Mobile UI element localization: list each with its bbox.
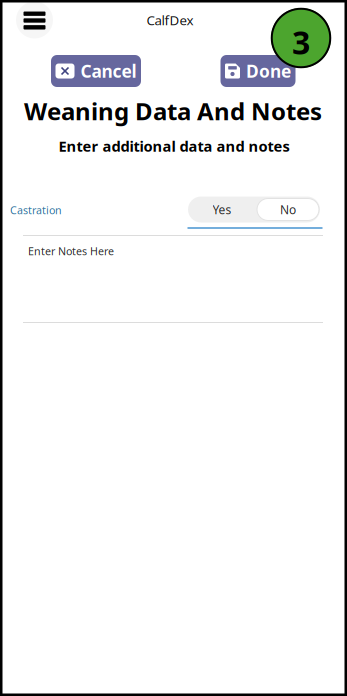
staticText: Enter additional data and notes	[58, 136, 289, 156]
staticText: No	[280, 201, 296, 217]
staticText: Yes	[212, 201, 231, 217]
staticText: 3	[292, 21, 310, 63]
button[interactable]: Yes	[188, 196, 256, 222]
staticText: Weaning Data And Notes	[24, 95, 322, 127]
staticText: Done	[246, 59, 291, 82]
button[interactable]: Cancel	[51, 55, 141, 87]
staticText: Castration	[10, 203, 62, 217]
button[interactable]: Enter Notes Here	[23, 236, 323, 323]
staticText: Enter Notes Here	[28, 244, 114, 258]
staticText: Cancel	[80, 59, 136, 82]
button[interactable]: No	[256, 196, 320, 222]
staticText: CalfDex	[146, 11, 193, 29]
button[interactable]: Menu	[14, 0, 54, 40]
button[interactable]: Done	[220, 55, 295, 87]
